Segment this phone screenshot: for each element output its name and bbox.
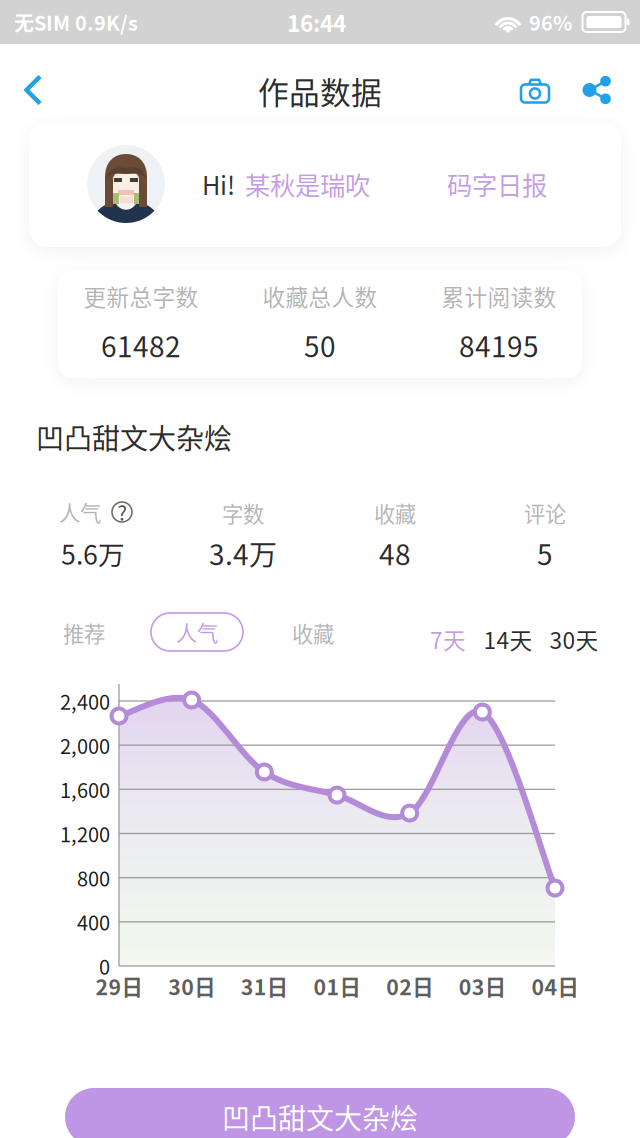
- staticText: 无SIM 0.9K/s: [14, 7, 138, 36]
- button[interactable]: 14天: [479, 617, 537, 661]
- staticText: 3.4万: [209, 533, 277, 573]
- staticText: 评论: [524, 498, 566, 528]
- staticText: 人气: [176, 617, 218, 647]
- staticText: 31日: [241, 971, 288, 1001]
- button[interactable]: 码字日报: [432, 161, 562, 207]
- staticText: 61482: [101, 325, 181, 365]
- staticText: 凹凸甜文大杂烩: [36, 417, 232, 457]
- staticText: 收藏: [292, 618, 334, 648]
- staticText: 96%: [529, 7, 572, 36]
- button[interactable]: Back: [5, 62, 61, 118]
- staticText: 码字日报: [447, 166, 547, 202]
- staticText: 2,000: [60, 731, 110, 760]
- staticText: 29日: [95, 971, 142, 1001]
- staticText: 字数: [222, 498, 264, 528]
- staticText: 7天: [430, 623, 466, 655]
- staticText: 30天: [549, 623, 598, 655]
- staticText: 14天: [483, 623, 532, 655]
- staticText: 50: [304, 325, 336, 365]
- button[interactable]: Camera: [508, 64, 562, 118]
- staticText: 04日: [531, 971, 578, 1001]
- staticText: 02日: [386, 971, 433, 1001]
- button[interactable]: 收藏: [277, 611, 349, 655]
- staticText: ?: [117, 497, 126, 526]
- staticText: 收藏: [374, 498, 416, 528]
- button[interactable]: Share: [570, 63, 624, 117]
- staticText: 某秋是瑞吹: [245, 166, 370, 202]
- button[interactable]: 7天: [424, 617, 472, 661]
- staticText: 5.6万: [61, 534, 125, 572]
- staticText: 累计阅读数: [441, 280, 556, 312]
- staticText: 收藏总人数: [262, 280, 377, 312]
- staticText: Hi!: [202, 166, 235, 202]
- staticText: 作品数据: [258, 69, 382, 113]
- staticText: 48: [379, 533, 411, 573]
- staticText: 1,200: [60, 819, 110, 848]
- button[interactable]: 推荐: [48, 611, 120, 655]
- staticText: 30日: [168, 971, 215, 1001]
- staticText: 01日: [313, 971, 360, 1001]
- button[interactable]: 凹凸甜文大杂烩: [65, 1088, 575, 1138]
- staticText: 1,600: [60, 775, 110, 804]
- staticText: 2,400: [60, 686, 110, 715]
- staticText: 凹凸甜文大杂烩: [222, 1097, 418, 1137]
- staticText: 800: [77, 863, 110, 892]
- staticText: 400: [77, 907, 110, 936]
- staticText: 5: [537, 533, 553, 573]
- staticText: 更新总字数: [83, 280, 198, 312]
- button[interactable]: 人气: [151, 613, 243, 651]
- staticText: 16:44: [287, 6, 346, 38]
- button[interactable]: 30天: [545, 617, 603, 661]
- staticText: 84195: [459, 325, 539, 365]
- staticText: 推荐: [63, 618, 105, 648]
- staticText: 0: [99, 951, 110, 980]
- staticText: 人气: [59, 497, 101, 527]
- staticText: 03日: [459, 971, 506, 1001]
